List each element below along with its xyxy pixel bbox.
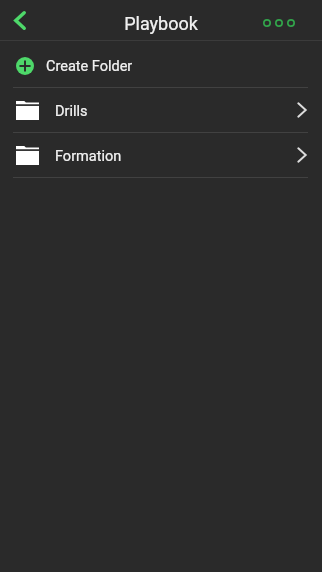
staticText: Drills xyxy=(55,103,88,120)
button[interactable]: Formation xyxy=(0,133,322,177)
button[interactable]: Drills xyxy=(0,88,322,132)
button[interactable]: Create Folder xyxy=(0,41,322,87)
button[interactable]: More options xyxy=(263,19,295,27)
staticText: Playbook xyxy=(124,13,198,34)
staticText: Formation xyxy=(55,148,122,165)
button[interactable]: Back xyxy=(0,0,44,40)
staticText: Create Folder xyxy=(46,58,133,75)
